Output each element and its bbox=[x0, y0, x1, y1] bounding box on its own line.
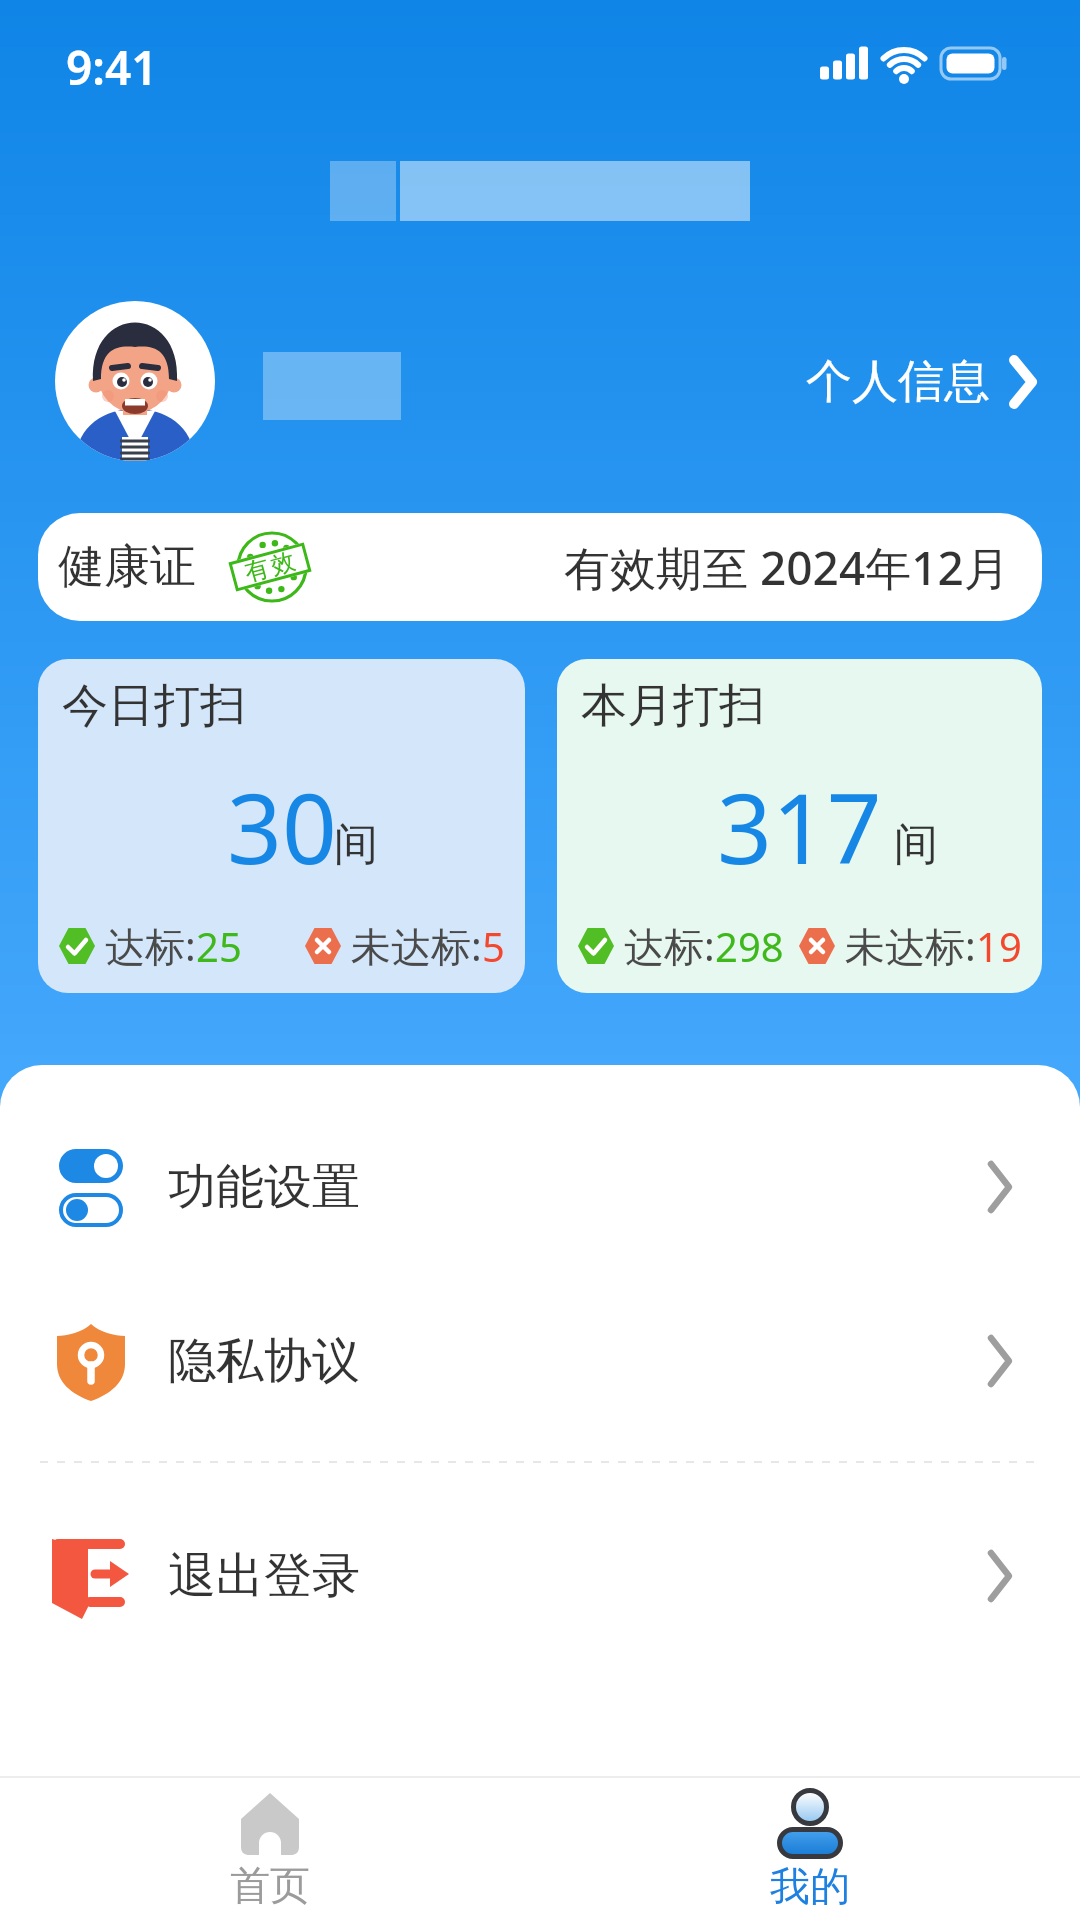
staticText: 功能设置 bbox=[168, 1157, 360, 1217]
staticText: 个人信息 bbox=[806, 353, 990, 411]
staticText: 未达标: bbox=[351, 918, 482, 973]
staticText: 本月打扫 bbox=[581, 677, 765, 735]
staticText: 19 bbox=[976, 919, 1022, 973]
staticText: 首页 bbox=[230, 1860, 310, 1910]
button[interactable]: 今日打扫 bbox=[38, 659, 525, 993]
button[interactable]: 健康证 bbox=[38, 513, 1042, 621]
staticText: 有效期至 2024年12月 bbox=[564, 536, 1010, 599]
staticText: 健康证 bbox=[58, 538, 196, 596]
button[interactable]: 个人信息 bbox=[806, 348, 1036, 416]
staticText: 25 bbox=[196, 919, 242, 973]
staticText: 9:41 bbox=[66, 36, 158, 99]
staticText: 我的 bbox=[770, 1861, 850, 1911]
staticText: 达标: bbox=[624, 918, 715, 973]
button[interactable]: 退出登录 bbox=[0, 1504, 1080, 1648]
staticText: 达标: bbox=[105, 918, 196, 973]
staticText: 298 bbox=[715, 919, 784, 973]
staticText: 有效 bbox=[240, 545, 300, 588]
staticText: 退出登录 bbox=[168, 1546, 360, 1606]
button[interactable]: 功能设置 bbox=[0, 1115, 1080, 1259]
button[interactable]: 本月打扫 bbox=[557, 659, 1042, 993]
staticText: 间 bbox=[334, 817, 378, 872]
button[interactable]: 首页 bbox=[0, 1776, 540, 1920]
staticText: 317 bbox=[717, 761, 882, 892]
staticText: 隐私协议 bbox=[168, 1331, 360, 1391]
staticText: 间 bbox=[894, 817, 938, 872]
button[interactable]: 隐私协议 bbox=[0, 1289, 1080, 1433]
staticText: 5 bbox=[482, 919, 505, 973]
button[interactable] bbox=[55, 301, 215, 461]
staticText: 未达标: bbox=[845, 918, 976, 973]
staticText: 今日打扫 bbox=[62, 677, 246, 735]
button[interactable]: 我的 bbox=[540, 1776, 1080, 1920]
staticText: 30 bbox=[227, 761, 337, 892]
